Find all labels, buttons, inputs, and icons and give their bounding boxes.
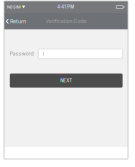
staticText: NEXT — [60, 78, 72, 83]
staticText: Password — [10, 51, 34, 57]
button[interactable]: Return — [4, 13, 29, 30]
button[interactable]: NEXT — [10, 73, 123, 88]
staticText: No SIM — [7, 5, 21, 9]
staticText: 4:41 PM — [57, 4, 74, 9]
staticText: Verification Code — [45, 18, 86, 24]
staticText: Return — [10, 18, 26, 25]
